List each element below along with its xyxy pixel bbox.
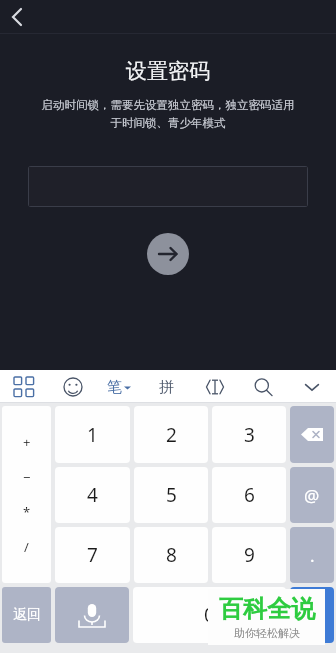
button[interactable]: 返回 — [2, 587, 51, 643]
button[interactable]: Back — [0, 0, 34, 34]
staticText: 3 — [244, 422, 255, 448]
staticText: 注 — [305, 606, 319, 624]
staticText: 5 — [166, 482, 177, 508]
staticText: 0 — [204, 602, 215, 628]
button[interactable] — [28, 166, 308, 207]
button[interactable]: 4 — [55, 467, 130, 523]
staticText: 返回 — [13, 606, 41, 624]
staticText: 6 — [244, 482, 255, 508]
staticText: 7 — [87, 542, 98, 568]
staticText: + — [23, 433, 31, 451]
button[interactable]: 9 — [212, 527, 286, 583]
staticText: − — [23, 468, 31, 486]
staticText: 4 — [87, 482, 98, 508]
button[interactable]: Search — [249, 373, 277, 401]
button[interactable]: 2 — [134, 406, 208, 463]
staticText: 2 — [166, 422, 177, 448]
staticText: 笔 — [107, 378, 122, 397]
button[interactable]: 6 — [212, 467, 286, 523]
staticText: 百科全说 — [219, 594, 315, 624]
button[interactable]: 5 — [134, 467, 208, 523]
staticText: 助你轻松解决 — [234, 626, 300, 640]
staticText: . — [310, 544, 315, 567]
staticText: 启动时间锁，需要先设置独立密码，独立密码适用 于时间锁、青少年模式 — [20, 98, 316, 131]
staticText: 拼 — [159, 378, 174, 397]
button[interactable]: 1 — [55, 406, 130, 463]
button[interactable]: Collapse keyboard — [298, 373, 326, 401]
button[interactable]: 注 — [290, 587, 334, 643]
button[interactable]: @ — [290, 467, 334, 523]
staticText: 9 — [244, 542, 255, 568]
button[interactable]: 拼 — [152, 373, 180, 401]
button[interactable]: Backspace — [290, 406, 334, 463]
staticText: 设置密码 — [0, 58, 336, 84]
button[interactable]: Cursor — [201, 373, 229, 401]
button[interactable]: 7 — [55, 527, 130, 583]
button[interactable]: 0 — [133, 587, 286, 643]
button[interactable]: 3 — [212, 406, 286, 463]
button[interactable]: . — [290, 527, 334, 583]
button[interactable]: Grid — [10, 373, 38, 401]
button[interactable]: 8 — [134, 527, 208, 583]
staticText: / — [24, 538, 29, 556]
staticText: 8 — [166, 542, 177, 568]
button[interactable]: 笔 — [107, 373, 131, 401]
staticText: * — [23, 503, 31, 521]
button[interactable]: Next — [147, 233, 189, 275]
button[interactable]: Voice input — [55, 587, 129, 643]
button[interactable]: Emoji — [59, 373, 87, 401]
staticText: @ — [304, 484, 320, 507]
button[interactable]: + — [2, 406, 51, 583]
staticText: 1 — [87, 422, 98, 448]
